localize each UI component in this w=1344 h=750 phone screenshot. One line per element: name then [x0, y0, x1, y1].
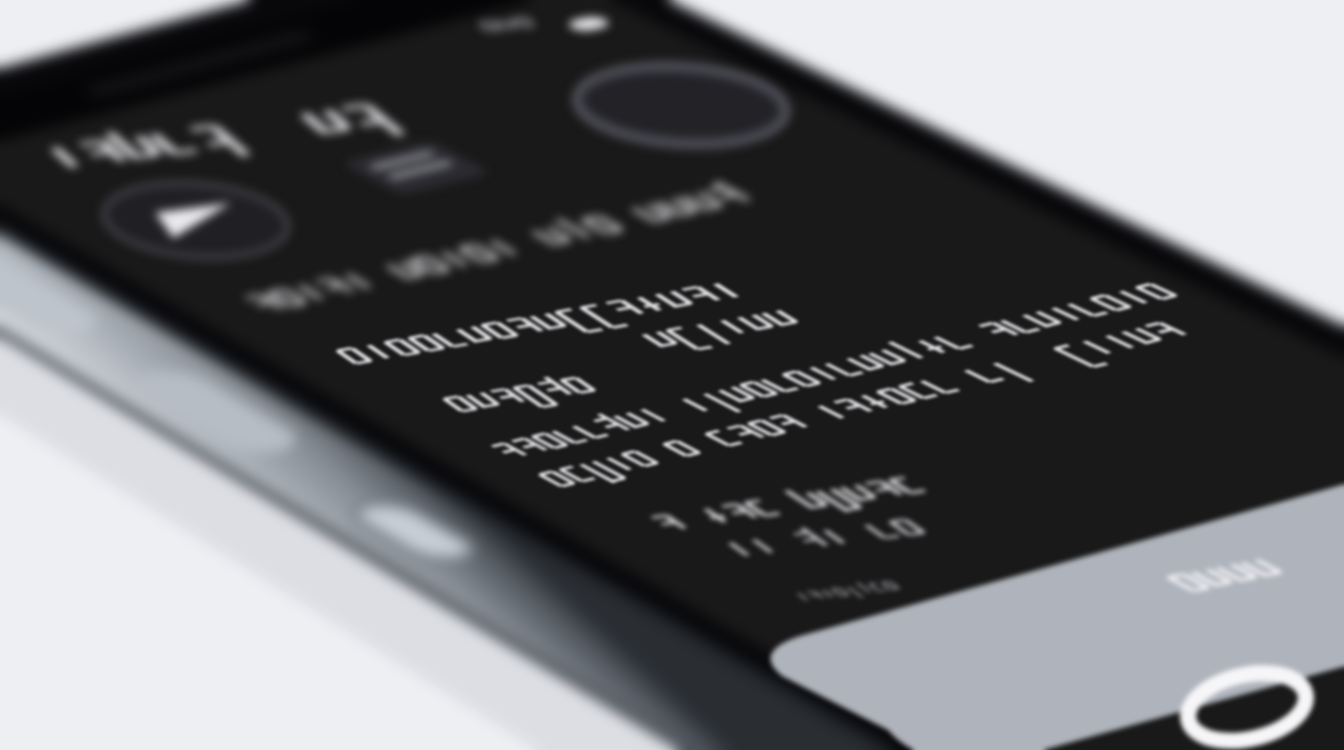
button[interactable]	[440, 430, 1160, 510]
button[interactable]	[300, 320, 860, 400]
button[interactable]: Settings	[142, 84, 542, 184]
button[interactable]	[600, 470, 1020, 550]
button[interactable]	[222, 270, 742, 350]
button[interactable]: List view	[330, 128, 480, 224]
button[interactable]: Account	[596, 62, 766, 160]
button[interactable]: Reader	[762, 452, 1344, 750]
button[interactable]: Home	[1186, 672, 1310, 746]
button[interactable]	[380, 380, 1070, 460]
button[interactable]: Send	[120, 176, 280, 272]
